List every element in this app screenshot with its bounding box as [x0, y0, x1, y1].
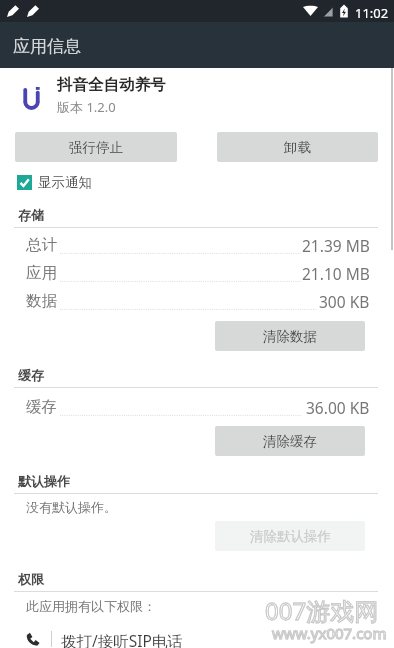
button[interactable]: Phone permission: [0, 630, 394, 648]
staticText: 权限: [18, 571, 44, 587]
button[interactable]: 应用: [0, 259, 394, 287]
staticText: 拨打/接听SIP电话: [61, 630, 183, 648]
staticText: 强行停止: [69, 139, 123, 156]
staticText: 此应用拥有以下权限：: [26, 598, 156, 614]
staticText: 11:02: [355, 4, 389, 22]
staticText: 清除数据: [263, 328, 317, 345]
button[interactable]: 缓存: [0, 393, 394, 421]
staticText: 版本 1.2.0: [57, 98, 116, 116]
staticText: 缓存: [18, 367, 44, 383]
button[interactable]: 应用信息: [0, 22, 394, 68]
staticText: 应用: [26, 263, 57, 283]
button[interactable]: 数据: [0, 287, 394, 315]
staticText: 显示通知: [38, 174, 92, 191]
staticText: 数据: [26, 291, 57, 311]
staticText: www.yx007.com: [272, 623, 387, 643]
staticText: 默认操作: [18, 473, 70, 489]
staticText: 存储: [18, 207, 44, 223]
staticText: 21.10 MB: [302, 263, 370, 284]
staticText: 卸载: [284, 139, 311, 156]
staticText: 007游戏网: [265, 594, 379, 627]
staticText: 抖音全自动养号: [57, 75, 166, 95]
staticText: 300 KB: [319, 291, 370, 312]
staticText: 21.39 MB: [302, 235, 370, 256]
button[interactable]: 卸载: [217, 132, 378, 162]
staticText: 总计: [26, 235, 57, 255]
staticText: 应用信息: [13, 36, 81, 57]
button[interactable]: 显示通知: [17, 174, 92, 191]
staticText: 清除默认操作: [250, 528, 331, 545]
other: Phone permission: [26, 632, 40, 646]
staticText: 缓存: [26, 397, 57, 417]
staticText: 36.00 KB: [306, 397, 370, 418]
button[interactable]: 强行停止: [15, 132, 177, 162]
button[interactable]: 总计: [0, 231, 394, 259]
button[interactable]: 清除默认操作: [215, 521, 365, 551]
button[interactable]: 清除数据: [215, 321, 365, 351]
staticText: 清除缓存: [263, 433, 317, 450]
staticText: 没有默认操作。: [26, 499, 117, 515]
button[interactable]: 清除缓存: [215, 426, 365, 456]
